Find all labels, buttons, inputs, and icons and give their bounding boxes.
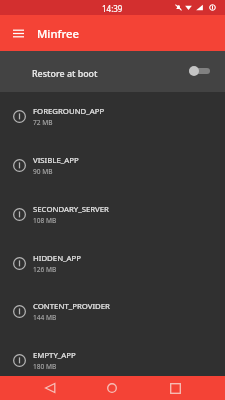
staticText: 126 MB: [33, 265, 57, 274]
staticText: VISIBLE_APP: [33, 155, 79, 166]
button[interactable]: Home: [92, 376, 132, 400]
staticText: 108 MB: [33, 216, 57, 225]
button[interactable]: VISIBLE_APP: [0, 141, 225, 190]
staticText: 14:39: [102, 3, 123, 14]
staticText: FOREGROUND_APP: [33, 106, 105, 117]
button[interactable]: Back: [30, 376, 70, 400]
button[interactable]: HIDDEN_APP: [0, 239, 225, 288]
staticText: 144 MB: [33, 313, 57, 322]
staticText: Restore at boot: [32, 67, 98, 79]
button[interactable]: CONTENT_PROVIDER: [0, 287, 225, 336]
button[interactable]: Recent apps: [155, 376, 195, 400]
staticText: 180 MB: [33, 362, 57, 371]
button[interactable]: FOREGROUND_APP: [0, 92, 225, 141]
button[interactable]: SECONDARY_SERVER: [0, 190, 225, 239]
staticText: 90 MB: [33, 167, 53, 176]
button[interactable]: Open navigation drawer: [8, 23, 28, 43]
staticText: HIDDEN_APP: [33, 253, 81, 264]
button[interactable]: Restore at boot: [0, 51, 225, 92]
staticText: CONTENT_PROVIDER: [33, 301, 110, 312]
button[interactable]: EMPTY_APP: [0, 336, 225, 385]
staticText: SECONDARY_SERVER: [33, 204, 109, 215]
staticText: EMPTY_APP: [33, 350, 76, 361]
staticText: Minfree: [37, 26, 80, 41]
staticText: 72 MB: [33, 118, 53, 127]
